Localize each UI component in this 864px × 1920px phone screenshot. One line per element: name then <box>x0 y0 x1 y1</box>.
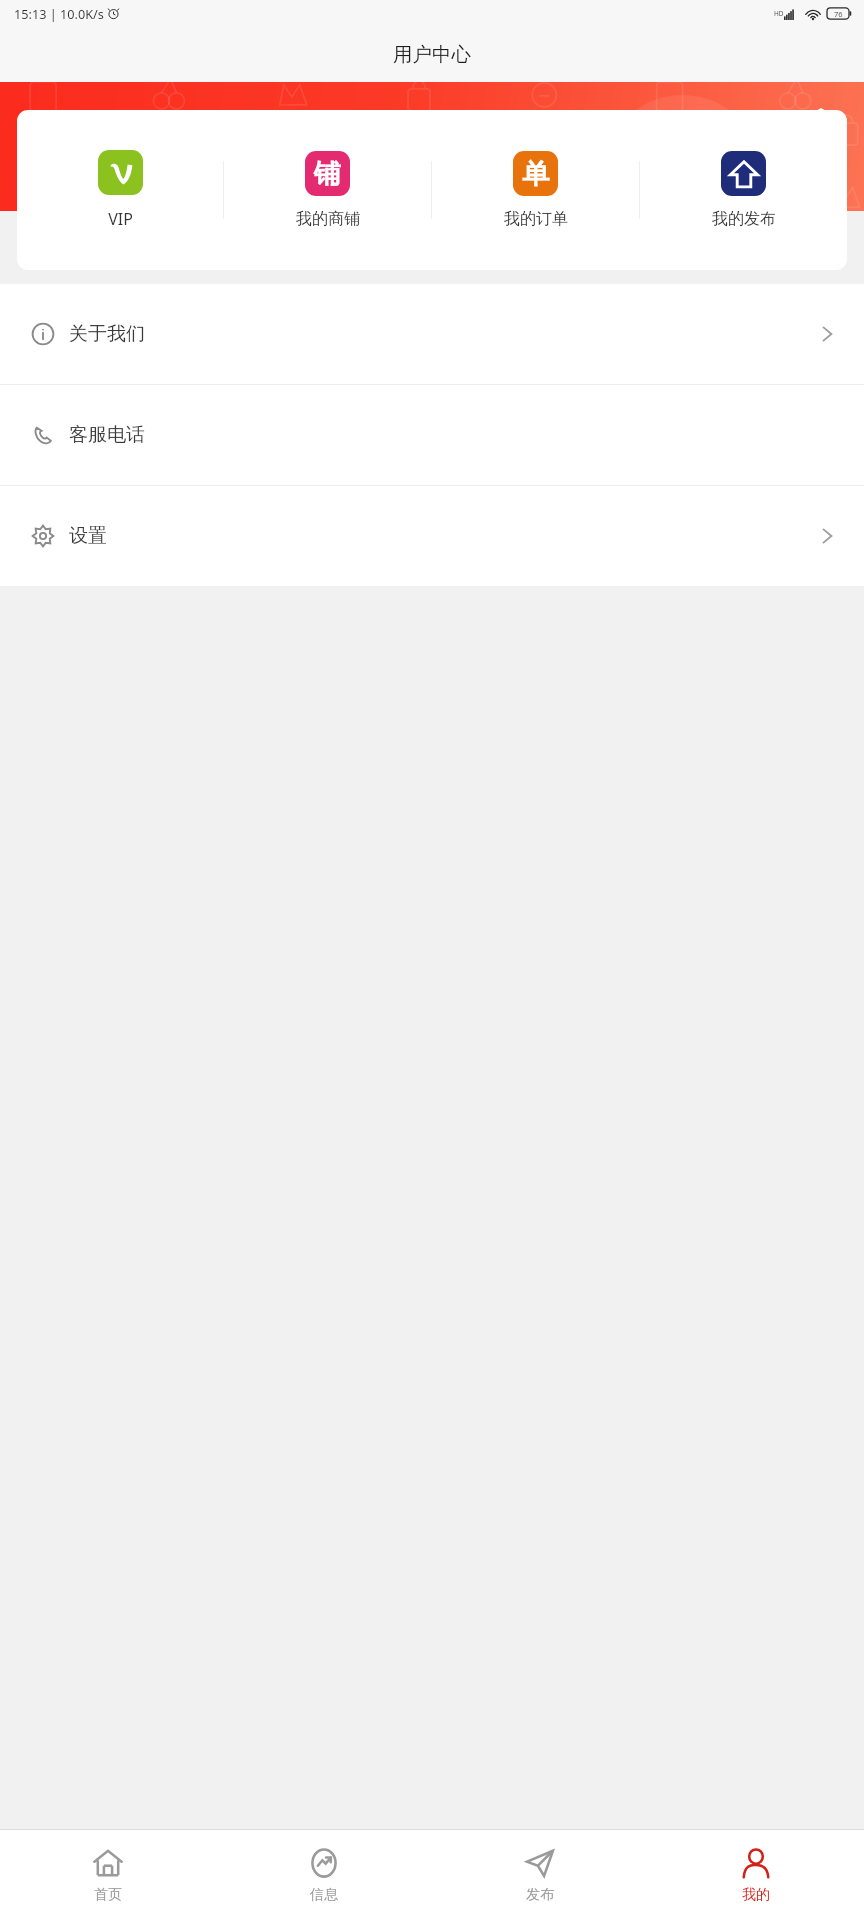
staticText: HD <box>774 9 784 18</box>
button[interactable]: 信息 <box>216 1830 432 1920</box>
staticText: 铺 <box>314 157 341 191</box>
button[interactable]: 客服电话 <box>0 385 864 485</box>
button[interactable]: 发布 <box>432 1830 648 1920</box>
button[interactable]: 铺 <box>224 110 431 270</box>
button[interactable]: 单 <box>432 110 639 270</box>
staticText: 信息 <box>310 1886 338 1904</box>
staticText: 关于我们 <box>69 322 145 346</box>
staticText: 求真 <box>94 168 111 179</box>
staticText: 请登录 <box>141 173 204 199</box>
button[interactable]: 关于我们 <box>0 284 864 384</box>
staticText: 首页 <box>94 1886 122 1904</box>
button[interactable]: 我的 <box>648 1830 864 1920</box>
staticText: 我的 <box>742 1886 770 1904</box>
button[interactable]: 首页 <box>0 1830 216 1920</box>
staticText: 发布 <box>526 1886 554 1904</box>
button[interactable]: 设置 <box>800 104 842 146</box>
staticText: 单 <box>522 157 549 191</box>
staticText: 我的订单 <box>504 209 568 229</box>
button[interactable]: 设置 <box>0 486 864 586</box>
staticText: 76 <box>834 9 843 19</box>
staticText: 用户中心 <box>393 42 471 67</box>
staticText: 客服电话 <box>69 423 145 447</box>
staticText: 我的商铺 <box>296 209 360 229</box>
staticText: VIP <box>108 208 133 230</box>
button[interactable]: 求真 <box>25 145 204 239</box>
button[interactable]: VIP <box>17 110 223 270</box>
staticText: 我的发布 <box>712 209 776 229</box>
staticText: 15:13 | 10.0K/s <box>14 5 104 22</box>
staticText: 设置 <box>69 524 107 548</box>
button[interactable]: 我的发布 <box>640 110 847 270</box>
